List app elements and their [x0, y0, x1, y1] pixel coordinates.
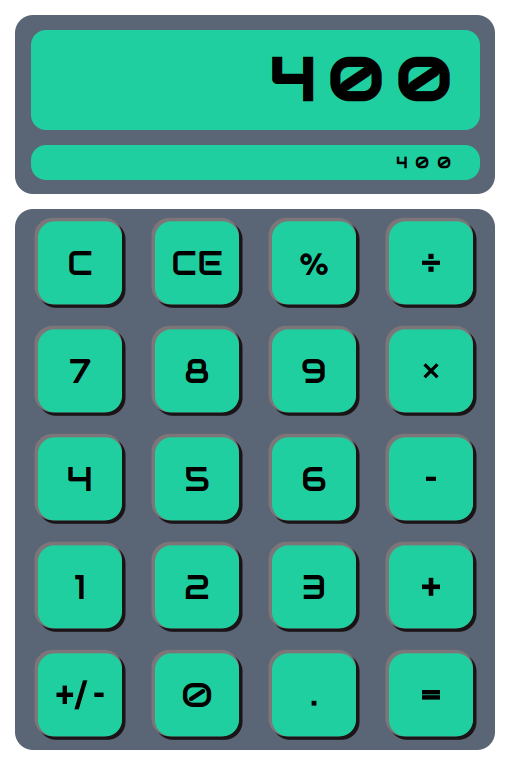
button[interactable]: 8 — [151, 326, 242, 416]
button[interactable]: CE — [151, 218, 242, 308]
button[interactable]: 5 — [151, 434, 242, 524]
staticText: C — [67, 241, 93, 285]
button[interactable]: 9 — [268, 326, 359, 416]
staticText: 4 — [66, 457, 93, 501]
button[interactable]: C — [34, 218, 125, 308]
button[interactable]: 3 — [268, 542, 359, 632]
button[interactable]: 1 — [34, 542, 125, 632]
button[interactable]: 2 — [151, 542, 242, 632]
button[interactable]: Minus — [385, 434, 476, 524]
staticText: 9 — [301, 349, 327, 393]
staticText: 400 — [396, 154, 451, 172]
staticText: 6 — [301, 457, 327, 501]
button[interactable]: Divide — [385, 218, 476, 308]
staticText: 2 — [184, 565, 210, 609]
staticText: 1 — [74, 565, 86, 609]
staticText: 7 — [69, 349, 91, 393]
staticText: % — [299, 241, 329, 285]
button[interactable]: 0 — [151, 650, 242, 740]
button[interactable]: 4 — [34, 434, 125, 524]
staticText: 8 — [184, 349, 210, 393]
button[interactable]: Plus — [385, 542, 476, 632]
staticText: 400 — [269, 42, 451, 118]
staticText: 5 — [184, 457, 210, 501]
button[interactable]: Decimal point — [268, 650, 359, 740]
button[interactable]: Plus or minus — [34, 650, 125, 740]
staticText: 3 — [301, 565, 326, 609]
staticText: 0 — [181, 673, 213, 717]
button[interactable]: 6 — [268, 434, 359, 524]
button[interactable]: Equals — [385, 650, 476, 740]
button[interactable]: Multiply — [385, 326, 476, 416]
button[interactable]: 7 — [34, 326, 125, 416]
button[interactable]: % — [268, 218, 359, 308]
staticText: CE — [171, 241, 223, 285]
